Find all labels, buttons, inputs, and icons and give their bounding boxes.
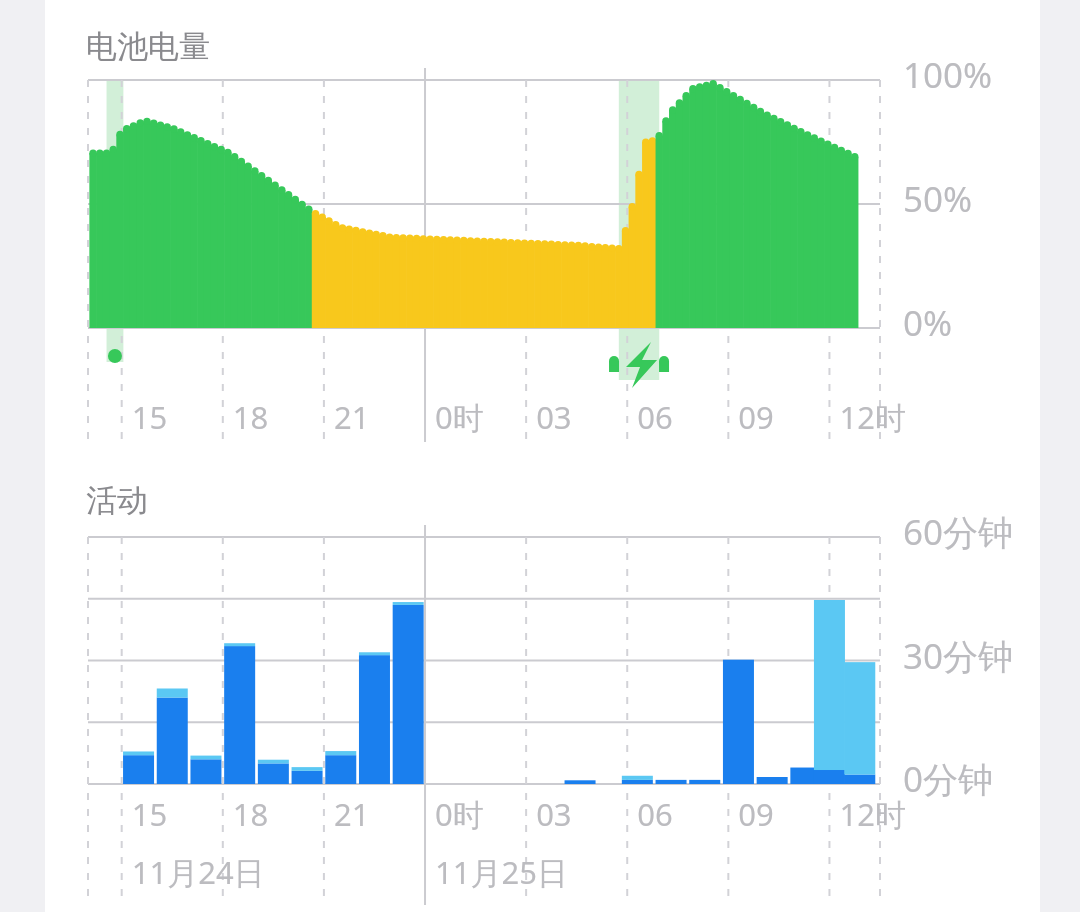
button[interactable]: Battery level and activity charts (0, 0, 1080, 912)
